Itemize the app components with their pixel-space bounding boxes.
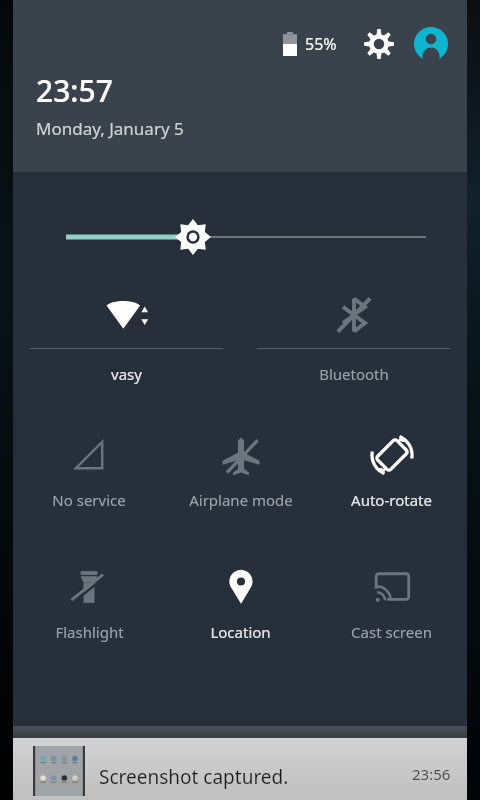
staticText: Cast screen [351, 622, 432, 642]
button[interactable]: Settings [359, 24, 399, 64]
staticText: Flashlight [55, 622, 124, 642]
staticText: Bluetooth [319, 364, 389, 384]
button[interactable]: Cast screen [316, 552, 467, 642]
button[interactable]: User profile [411, 24, 451, 64]
button[interactable]: No service [13, 420, 165, 510]
button[interactable]: Airplane mode [165, 420, 316, 510]
staticText: No service [52, 490, 126, 510]
button[interactable]: 23:57 [36, 70, 184, 140]
staticText: Monday, January 5 [36, 117, 184, 140]
staticText: Screenshot captured. [99, 764, 289, 790]
staticText: 23:57 [36, 70, 113, 111]
staticText: Location [210, 622, 271, 642]
button[interactable]: Brightness [13, 212, 467, 262]
button[interactable]: Flashlight [13, 552, 165, 642]
staticText: Auto-rotate [351, 490, 432, 510]
staticText: 23:56 [412, 764, 451, 784]
button[interactable]: Screenshot captured. [13, 738, 467, 800]
staticText: Airplane mode [189, 490, 293, 510]
staticText: 55% [305, 33, 337, 55]
button[interactable]: Bluetooth [240, 282, 467, 384]
button[interactable]: Location [165, 552, 316, 642]
button[interactable]: vasy [13, 282, 240, 384]
staticText: vasy [111, 364, 142, 384]
button[interactable]: Auto-rotate [316, 420, 467, 510]
